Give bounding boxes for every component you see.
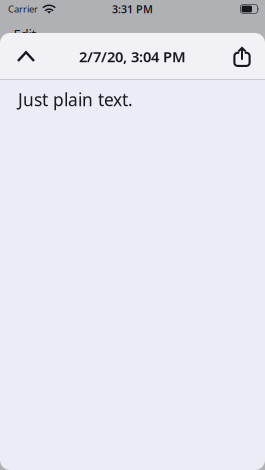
staticText: Edit bbox=[13, 25, 36, 43]
staticText: Just plain text. bbox=[18, 88, 133, 111]
staticText: 3:31 PM bbox=[112, 2, 153, 16]
staticText: Carrier bbox=[8, 3, 38, 15]
button[interactable]: Collapse bbox=[4, 33, 48, 80]
staticText: 2/7/20, 3:04 PM bbox=[79, 47, 186, 66]
button[interactable]: Share bbox=[220, 33, 264, 80]
button[interactable]: Edit bbox=[0, 19, 50, 49]
